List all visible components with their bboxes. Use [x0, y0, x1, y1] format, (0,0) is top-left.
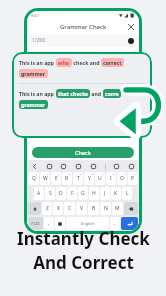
button[interactable]: Q [28, 172, 39, 185]
button[interactable]: GIF [60, 163, 67, 170]
staticText: Grammar Check [60, 23, 107, 31]
staticText: B [92, 205, 96, 212]
staticText: L [126, 190, 129, 197]
staticText: A [37, 190, 41, 197]
staticText: 6 [91, 172, 93, 175]
staticText: Y [88, 175, 91, 182]
staticText: C [68, 205, 72, 212]
button[interactable]: Emoji [55, 217, 65, 230]
button[interactable]: Backspace [124, 202, 138, 215]
button[interactable]: W [40, 172, 50, 185]
button[interactable]: , [44, 217, 54, 230]
staticText: 2 [47, 172, 49, 175]
button[interactable]: V [76, 202, 87, 215]
button[interactable]: X [53, 202, 63, 215]
button[interactable]: D [56, 187, 66, 200]
staticText: Instantly Check [17, 227, 150, 250]
button[interactable]: M [112, 202, 123, 215]
staticText: M [115, 205, 120, 212]
staticText: T [77, 175, 80, 182]
button[interactable]: U [95, 172, 105, 185]
button[interactable]: I [106, 172, 116, 185]
button[interactable]: K [111, 187, 121, 200]
other: Correct [112, 78, 166, 132]
staticText: 5 [80, 172, 82, 175]
button[interactable]: L [122, 187, 132, 200]
button[interactable]: This is an app [12, 52, 152, 138]
staticText: G [81, 190, 85, 197]
staticText: Q [32, 175, 36, 182]
button[interactable]: Enter [121, 217, 138, 230]
button[interactable]: G [78, 187, 88, 200]
button[interactable]: Menu [128, 38, 134, 44]
staticText: This is an app [19, 59, 56, 66]
button[interactable]: Z [42, 202, 52, 215]
staticText: and [90, 90, 103, 97]
staticText: 1 [36, 172, 38, 175]
button[interactable]: O [117, 172, 127, 185]
button[interactable]: E [51, 172, 61, 185]
staticText: I [110, 175, 112, 182]
button[interactable]: Voice [128, 163, 135, 170]
button[interactable]: N [100, 202, 111, 215]
staticText: R [65, 175, 69, 182]
button[interactable]: J [100, 187, 110, 200]
button[interactable]: English [66, 217, 109, 230]
staticText: S [49, 190, 52, 197]
staticText: grammer [21, 70, 46, 77]
staticText: N [104, 205, 108, 212]
button[interactable]: R [62, 172, 72, 185]
button[interactable]: S [45, 187, 55, 200]
staticText: W [43, 175, 48, 182]
staticText: 9 [124, 172, 126, 175]
staticText: U [98, 175, 102, 182]
button[interactable]: Check [32, 147, 134, 158]
button[interactable]: Back [31, 163, 38, 170]
staticText: 7 [102, 172, 104, 175]
staticText: 4 [69, 172, 71, 175]
staticText: grammar [21, 101, 46, 108]
button[interactable]: More [113, 163, 120, 170]
button[interactable]: Clipboard [75, 163, 82, 170]
staticText: , [48, 220, 50, 227]
button[interactable]: Shift [28, 202, 41, 215]
button[interactable]: . [110, 217, 120, 230]
button[interactable]: T [73, 172, 83, 185]
button[interactable]: ?123 [28, 217, 43, 230]
button[interactable]: A [34, 187, 44, 200]
staticText: check and [72, 59, 101, 66]
staticText: 1/200 [32, 37, 46, 44]
staticText: correct [103, 59, 122, 66]
staticText: 3 [58, 172, 60, 175]
button[interactable]: F [67, 187, 77, 200]
button[interactable]: Sticker [46, 163, 53, 170]
staticText: X [57, 205, 60, 212]
button[interactable]: B [88, 202, 99, 215]
staticText: Check [75, 149, 91, 156]
staticText: J [104, 190, 106, 197]
button[interactable]: C [64, 202, 75, 215]
staticText: O [120, 175, 124, 182]
staticText: who [58, 59, 70, 66]
staticText: that checks [58, 90, 88, 97]
staticText: ?123 [31, 221, 40, 226]
staticText: English [81, 221, 95, 226]
staticText: . [114, 220, 116, 227]
staticText: P [131, 175, 135, 182]
staticText: Z [46, 205, 49, 212]
staticText: 8 [113, 172, 115, 175]
staticText: 9:41 [31, 13, 39, 18]
button[interactable]: H [89, 187, 99, 200]
button[interactable]: P [128, 172, 138, 185]
staticText: K [114, 190, 118, 197]
staticText: 0 [135, 172, 137, 175]
button[interactable]: Close [127, 23, 135, 31]
staticText: V [80, 205, 84, 212]
staticText: F [71, 190, 74, 197]
button[interactable]: Y [84, 172, 94, 185]
button[interactable]: Settings [90, 163, 97, 170]
staticText: H [92, 190, 96, 197]
staticText: And Correct [33, 251, 134, 274]
staticText: This is an app [19, 90, 56, 97]
staticText: D [59, 190, 63, 197]
